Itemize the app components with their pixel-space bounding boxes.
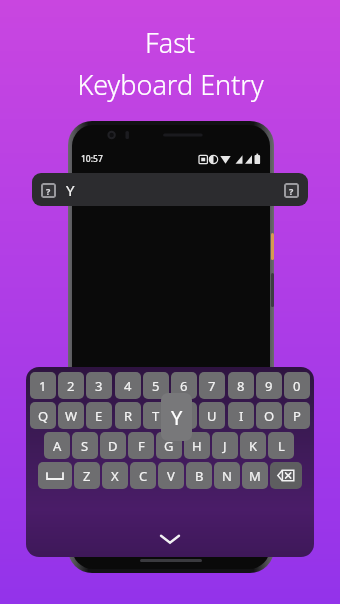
staticText: H	[192, 437, 202, 455]
staticText: G	[164, 437, 174, 455]
button[interactable]: U	[199, 402, 225, 429]
button[interactable]: 0	[284, 372, 310, 399]
staticText: T	[152, 407, 160, 425]
staticText: V	[167, 467, 175, 485]
staticText: C	[139, 467, 148, 485]
staticText: Q	[38, 407, 49, 425]
staticText: 0	[293, 377, 301, 395]
staticText: 8	[237, 377, 245, 395]
button[interactable]: C	[130, 462, 156, 489]
button[interactable]: 3	[86, 372, 112, 399]
staticText: Y	[171, 404, 183, 431]
button[interactable]: W	[58, 402, 84, 429]
button[interactable]: 1	[30, 372, 56, 399]
staticText: 9	[265, 377, 273, 395]
button[interactable]: G	[156, 432, 182, 459]
staticText: 6	[180, 377, 188, 395]
button[interactable]: N	[214, 462, 240, 489]
button[interactable]: 6	[171, 372, 197, 399]
button[interactable]: 4	[115, 372, 141, 399]
button[interactable]: B	[186, 462, 212, 489]
button[interactable]: 7	[199, 372, 225, 399]
staticText: Y	[66, 180, 75, 200]
button[interactable]: 5	[143, 372, 169, 399]
staticText: P	[293, 407, 301, 425]
staticText: Keyboard Entry	[77, 66, 264, 103]
staticText: W	[65, 407, 78, 425]
button[interactable]: D	[100, 432, 126, 459]
button[interactable]: F	[128, 432, 154, 459]
button[interactable]: Help	[284, 183, 299, 198]
staticText: Y	[180, 407, 188, 425]
staticText: 10:57	[81, 153, 103, 165]
button[interactable]: P	[284, 402, 310, 429]
staticText: D	[108, 437, 118, 455]
staticText: 5	[152, 377, 160, 395]
button[interactable]: R	[115, 402, 141, 429]
button[interactable]: A	[44, 432, 70, 459]
button[interactable]: 2	[58, 372, 84, 399]
staticText: L	[278, 437, 285, 455]
staticText: ?	[46, 185, 51, 197]
staticText: O	[264, 407, 275, 425]
staticText: 1	[39, 377, 47, 395]
button[interactable]: E	[86, 402, 112, 429]
staticText: E	[95, 407, 103, 425]
button[interactable]: O	[256, 402, 282, 429]
staticText: 3	[95, 377, 103, 395]
staticText: B	[195, 467, 204, 485]
staticText: X	[111, 467, 119, 485]
staticText: S	[81, 437, 89, 455]
button[interactable]: K	[240, 432, 266, 459]
button[interactable]: 9	[256, 372, 282, 399]
button[interactable]: V	[158, 462, 184, 489]
button[interactable]: Help	[41, 183, 56, 198]
staticText: K	[249, 437, 258, 455]
button[interactable]: Hide keyboard	[155, 530, 185, 548]
staticText: Z	[83, 467, 91, 485]
staticText: Fast	[145, 24, 195, 61]
staticText: 7	[208, 377, 216, 395]
button[interactable]: Y	[171, 402, 197, 429]
staticText: N	[222, 467, 232, 485]
button[interactable]: Help	[32, 173, 308, 206]
button[interactable]: X	[102, 462, 128, 489]
button[interactable]: L	[268, 432, 294, 459]
staticText: 4	[124, 377, 132, 395]
staticText: F	[138, 437, 145, 455]
button[interactable]: Z	[74, 462, 100, 489]
button[interactable]: H	[184, 432, 210, 459]
button[interactable]: 8	[228, 372, 254, 399]
button[interactable]: S	[72, 432, 98, 459]
staticText: R	[124, 407, 133, 425]
staticText: 2	[67, 377, 75, 395]
button[interactable]: T	[143, 402, 169, 429]
button[interactable]: Backspace	[270, 462, 302, 489]
button[interactable]: Q	[30, 402, 56, 429]
button[interactable]: Space	[38, 462, 72, 489]
button[interactable]: M	[242, 462, 268, 489]
staticText: J	[223, 437, 227, 455]
staticText: U	[207, 407, 217, 425]
button[interactable]: Y	[161, 393, 192, 441]
button[interactable]: I	[228, 402, 254, 429]
staticText: ?	[289, 185, 294, 197]
staticText: I	[239, 407, 244, 425]
staticText: M	[249, 467, 261, 485]
staticText: A	[53, 437, 62, 455]
button[interactable]: J	[212, 432, 238, 459]
